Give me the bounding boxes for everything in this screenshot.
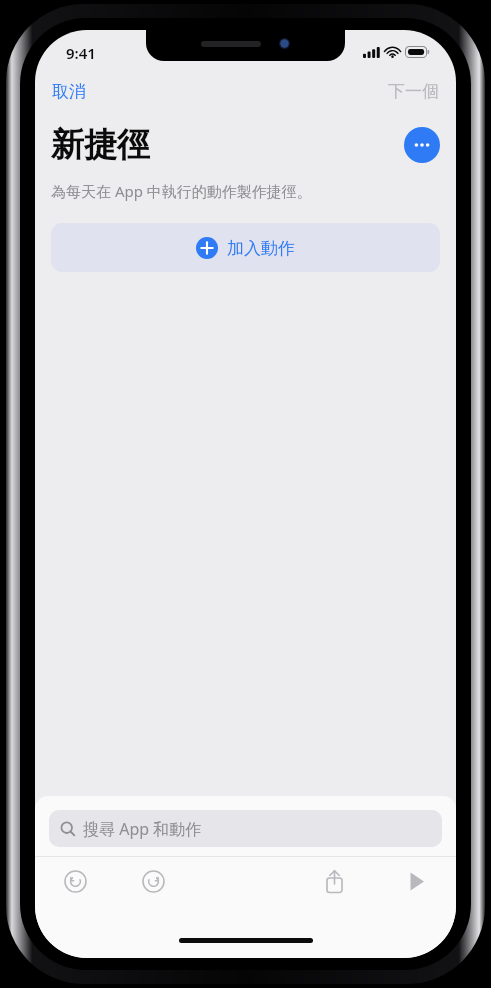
staticText: 新捷徑 [51, 124, 150, 166]
button[interactable]: 下一個 [386, 77, 441, 106]
staticText: 搜尋 App 和動作 [83, 818, 202, 840]
button[interactable]: 還原 [57, 863, 93, 899]
button[interactable]: 執行 [398, 863, 434, 899]
button[interactable]: 更多選項 [404, 127, 440, 163]
staticText: 下一個 [388, 81, 439, 102]
button[interactable]: 加入動作 [51, 223, 440, 272]
button[interactable]: 分享 [316, 863, 352, 899]
button[interactable]: 搜尋 App 和動作 [49, 810, 442, 847]
button[interactable]: 取消 [50, 77, 88, 106]
staticText: 加入動作 [227, 238, 295, 259]
staticText: 取消 [52, 81, 86, 102]
staticText: 9:41 [66, 43, 96, 63]
button[interactable]: 重做 [135, 863, 171, 899]
staticText: 為每天在 App 中執行的動作製作捷徑。 [51, 181, 312, 201]
